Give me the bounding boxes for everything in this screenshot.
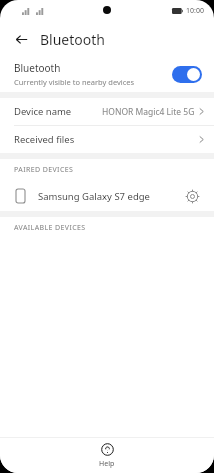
staticText: AVAILABLE DEVICES (14, 223, 86, 233)
staticText: Device name (14, 105, 72, 118)
staticText: Received files (14, 133, 75, 146)
staticText: Samsung Galaxy S7 edge (38, 190, 150, 203)
button[interactable]: Device settings (182, 186, 202, 206)
staticText: Bluetooth (40, 30, 105, 49)
staticText: Help (99, 459, 115, 469)
staticText: 10:00 (186, 6, 204, 16)
staticText: PAIRED DEVICES (14, 165, 74, 175)
button[interactable]: Bluetooth on (172, 66, 202, 83)
staticText: Currently visible to nearby devices (14, 77, 135, 87)
staticText: Bluetooth (14, 61, 61, 75)
button[interactable]: Received files (0, 126, 214, 153)
button[interactable]: Device name (0, 98, 214, 125)
button[interactable]: Back (8, 26, 34, 52)
button[interactable]: Bluetooth (0, 56, 214, 92)
button[interactable]: Help (0, 437, 214, 473)
button[interactable]: Samsung Galaxy S7 edge (0, 181, 214, 211)
staticText: HONOR Magic4 Lite 5G (102, 106, 195, 118)
